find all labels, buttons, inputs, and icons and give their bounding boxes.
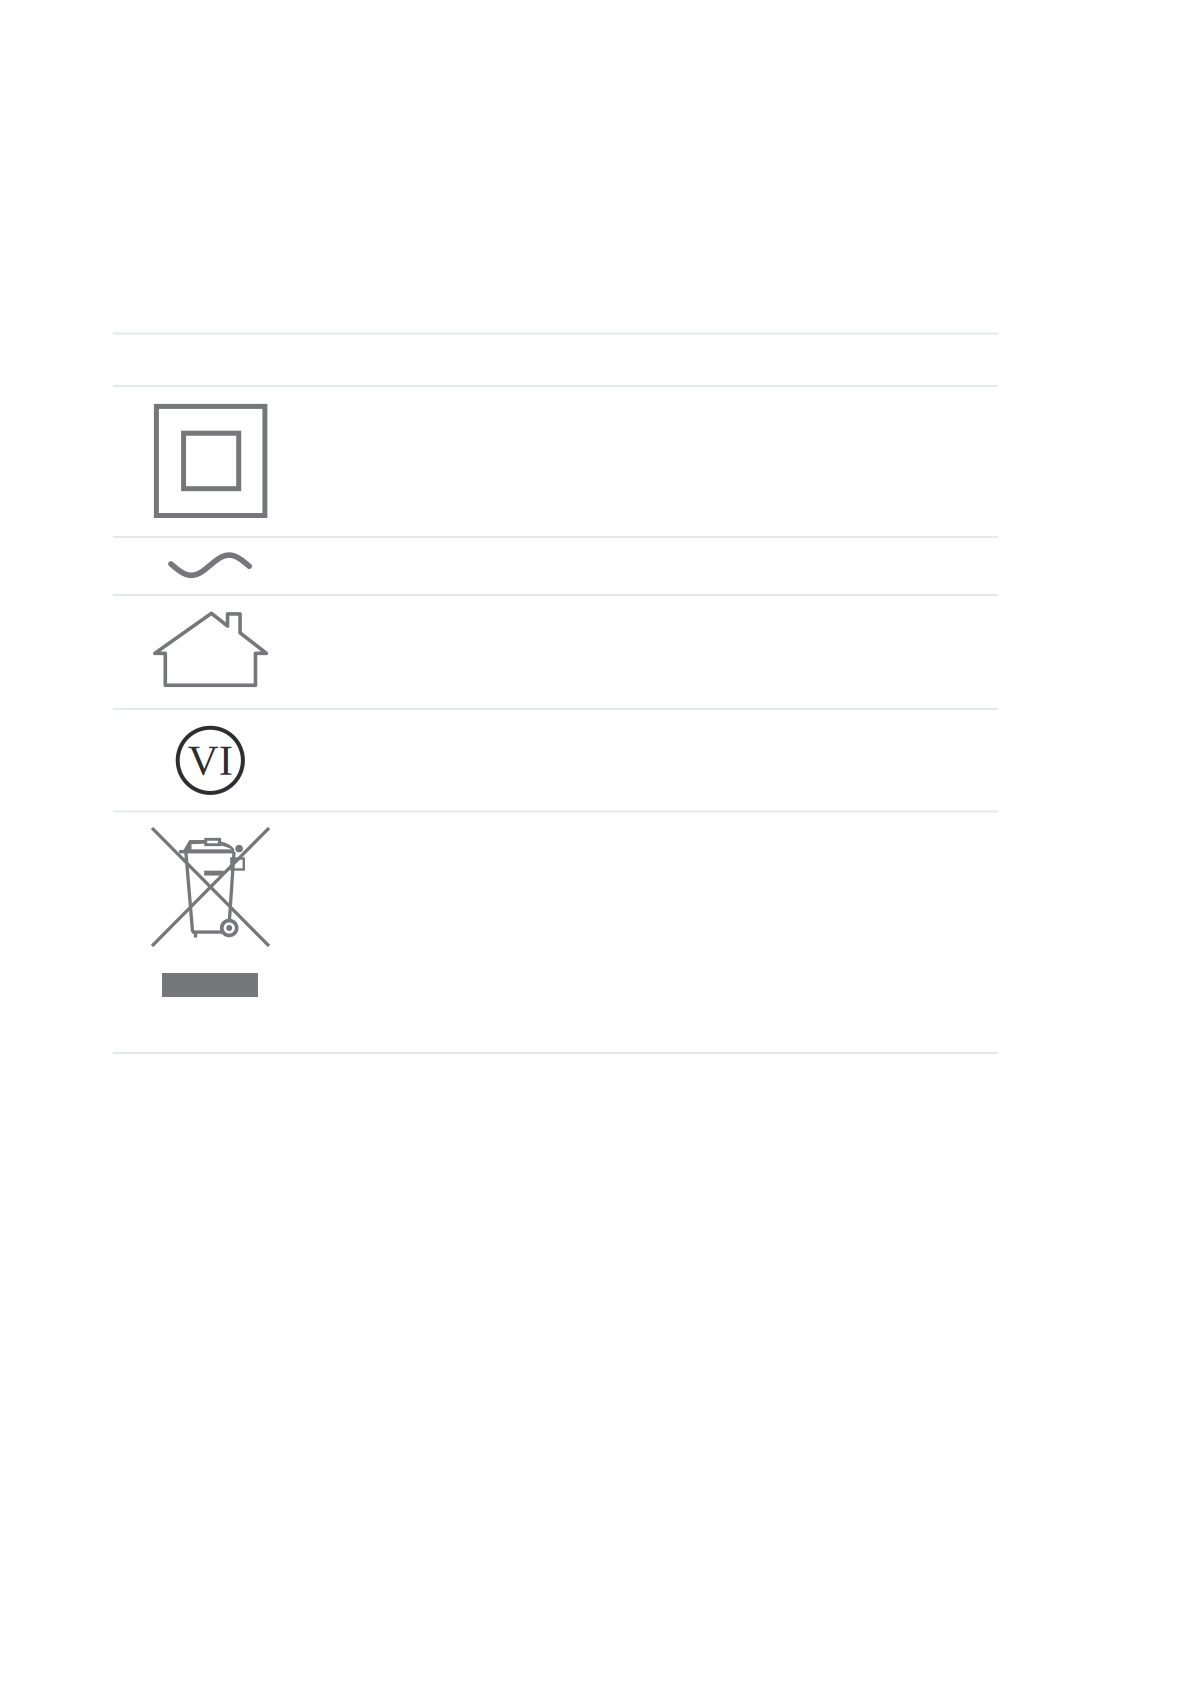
staticText: VI xyxy=(188,737,233,784)
